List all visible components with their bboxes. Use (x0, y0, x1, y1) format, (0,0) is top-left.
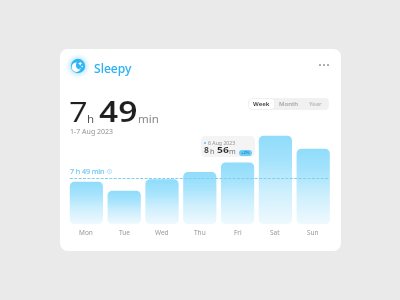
staticText: Mon (79, 228, 93, 237)
staticText: Sun (307, 228, 319, 237)
staticText: Sleepy (94, 60, 132, 76)
staticText: Year (309, 100, 322, 108)
staticText: Week (253, 100, 270, 108)
staticText: 7 h 49 min (70, 166, 105, 176)
staticText: Sat (270, 228, 280, 237)
button[interactable]: More options (314, 58, 334, 72)
button[interactable]: Week (249, 99, 274, 109)
staticText: 49 (99, 92, 143, 130)
staticText: h (210, 146, 215, 156)
staticText: Tue (119, 228, 130, 237)
staticText: 56 (217, 144, 230, 156)
staticText: min (138, 111, 159, 127)
staticText: Fri (234, 228, 242, 237)
staticText: Wed (155, 228, 169, 237)
staticText: Month (279, 100, 298, 108)
staticText: h (87, 111, 95, 127)
staticText: 8 (204, 144, 209, 156)
staticText: Thu (194, 228, 206, 237)
button[interactable]: Month (275, 98, 302, 110)
staticText: 1-7 Aug 2023 (70, 127, 114, 137)
button[interactable]: Year (302, 98, 329, 110)
staticText: 7 (69, 92, 88, 130)
staticText: m (229, 146, 236, 156)
staticText: 6 Aug 2023 (208, 139, 236, 146)
staticText: +2% (241, 150, 250, 155)
